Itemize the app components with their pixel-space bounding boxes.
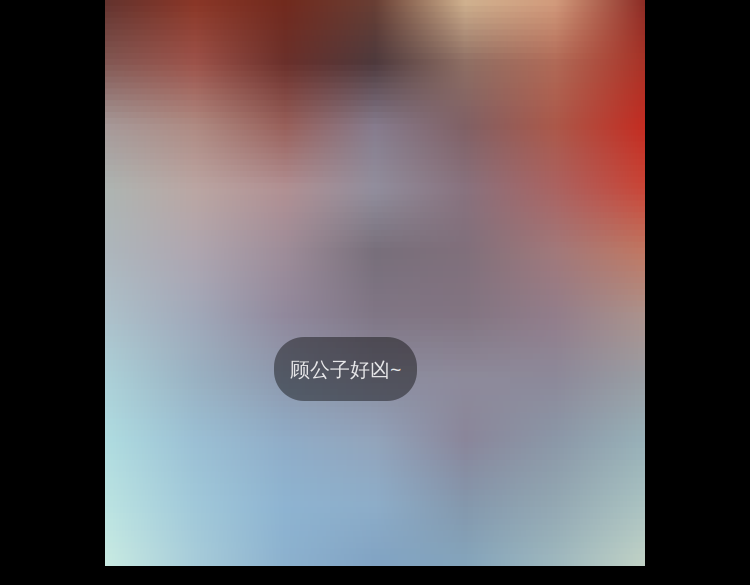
staticText: 顾公子好凶~ xyxy=(290,356,401,382)
